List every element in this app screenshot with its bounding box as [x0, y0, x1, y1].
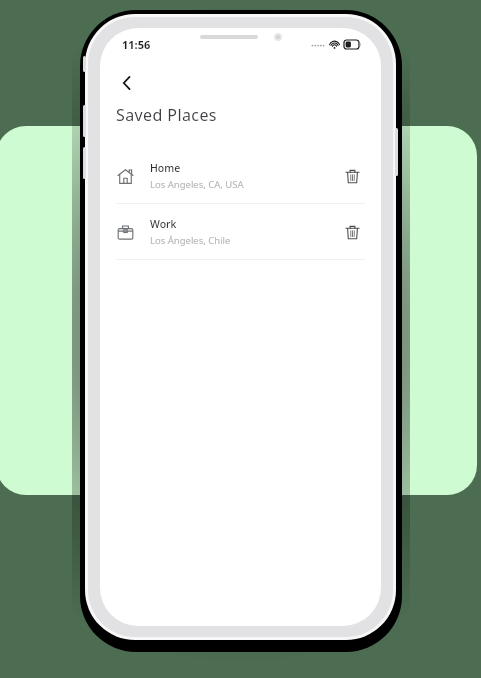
staticText: Los Ángeles, Chile: [150, 234, 231, 247]
button[interactable]: Delete Work: [337, 217, 367, 247]
staticText: Los Angeles, CA, USA: [150, 178, 244, 191]
button[interactable]: Work: [100, 204, 381, 259]
button[interactable]: Delete Home: [337, 161, 367, 191]
staticText: Work: [150, 217, 177, 231]
button[interactable]: Home: [100, 148, 381, 203]
staticText: 11:56: [122, 37, 151, 52]
staticText: Home: [150, 161, 181, 175]
staticText: Saved Places: [116, 104, 217, 126]
button[interactable]: Back: [108, 64, 146, 102]
